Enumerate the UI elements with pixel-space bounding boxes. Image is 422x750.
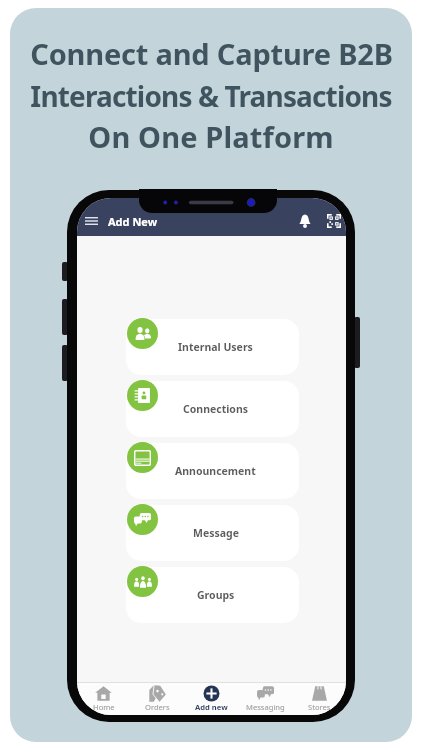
button[interactable]: Connections [126, 381, 299, 437]
staticText: Orders [145, 702, 170, 712]
button[interactable]: Message [126, 505, 299, 561]
staticText: Announcement [175, 464, 256, 478]
button[interactable]: Orders [130, 683, 184, 715]
button[interactable]: Internal Users [126, 319, 299, 375]
button[interactable]: Menu [80, 210, 102, 232]
button[interactable]: Scan QR code [323, 210, 345, 232]
staticText: Add new [195, 702, 228, 712]
staticText: Connections [183, 402, 248, 416]
staticText: Internal Users [178, 340, 253, 354]
staticText: Interactions & Transactions [30, 77, 392, 115]
button[interactable]: Stores [292, 683, 346, 715]
button[interactable]: Announcement [126, 443, 299, 499]
button[interactable]: Messaging [238, 683, 292, 715]
staticText: Groups [197, 588, 235, 602]
staticText: Add New [108, 214, 158, 229]
staticText: Home [93, 702, 115, 712]
staticText: Stores [308, 702, 331, 712]
staticText: On One Platform [88, 117, 334, 156]
button[interactable]: Notifications [294, 210, 316, 232]
staticText: Messaging [246, 702, 285, 712]
button[interactable]: Home [77, 683, 130, 715]
button[interactable]: Groups [126, 567, 299, 623]
staticText: Message [193, 526, 239, 540]
button[interactable]: Add new [184, 683, 238, 715]
staticText: Connect and Capture B2B [30, 34, 393, 73]
